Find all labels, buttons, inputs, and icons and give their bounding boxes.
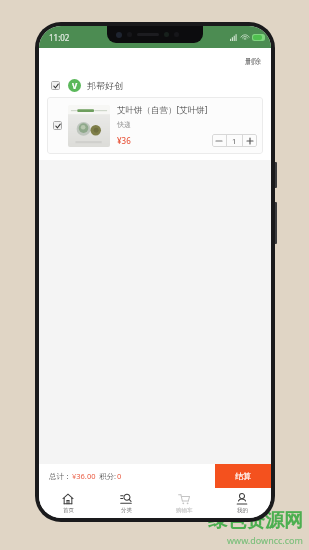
button[interactable]: 首页 [39,488,97,518]
button[interactable]: 删除 [235,52,271,70]
staticText: 购物车 [176,507,193,514]
staticText: 1 [232,136,237,146]
staticText: 删除 [245,56,261,66]
button[interactable]: Select [47,97,263,154]
staticText: 分类 [121,507,132,514]
button[interactable]: Decrease quantity [212,134,226,147]
button[interactable]: Select [53,121,62,130]
staticText: 绿色资源网 [208,509,303,533]
button[interactable]: 我的 [213,488,271,518]
staticText: 艾叶饼（自营）[艾叶饼] [117,104,208,116]
staticText: 总计： [49,472,72,481]
staticText: www.downcc.com [227,534,303,546]
button[interactable]: 邦帮好创 [87,80,123,91]
button[interactable]: 分类 [97,488,155,518]
button[interactable]: Select [51,81,60,90]
button[interactable]: 购物车 [155,488,213,518]
staticText: 积分: [99,471,117,481]
staticText: 邦帮好创 [87,80,123,91]
staticText: ¥36 [117,135,131,146]
staticText: ¥36.00 [72,471,96,481]
button[interactable]: Increase quantity [243,134,257,147]
staticText: 快递 [117,120,131,129]
button[interactable]: 结算 [215,464,271,488]
staticText: 结算 [235,471,251,481]
staticText: 11:02 [49,32,70,43]
staticText: 我的 [237,507,248,514]
staticText: V [72,80,78,91]
staticText: 0 [117,471,122,481]
staticText: 首页 [63,507,74,514]
